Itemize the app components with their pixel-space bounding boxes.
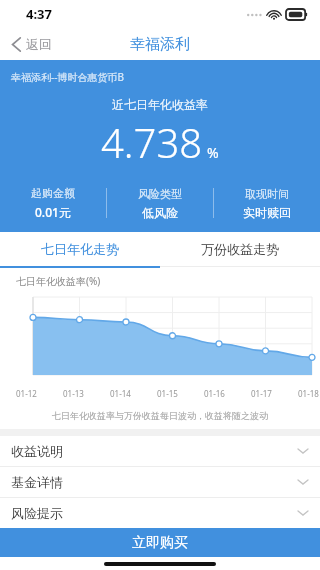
staticText: 返回 bbox=[26, 36, 52, 52]
staticText: 风险类型 bbox=[138, 187, 182, 201]
staticText: 幸福添利 bbox=[130, 35, 190, 54]
button[interactable]: 七日年化走势 bbox=[0, 232, 160, 266]
staticText: 01-12 bbox=[16, 388, 37, 399]
staticText: 幸福添利--博时合惠货币B bbox=[11, 70, 124, 84]
staticText: 低风险 bbox=[142, 205, 178, 220]
button[interactable]: 立即购买 bbox=[0, 528, 320, 557]
staticText: 近七日年化收益率 bbox=[0, 97, 320, 112]
staticText: % bbox=[207, 143, 219, 162]
staticText: 01-13 bbox=[63, 388, 84, 399]
button[interactable]: 风险提示 bbox=[0, 498, 320, 528]
staticText: 实时赎回 bbox=[243, 205, 291, 220]
staticText: 七日年化收益率与万份收益每日波动，收益将随之波动 bbox=[0, 410, 320, 421]
staticText: 风险提示 bbox=[11, 505, 63, 521]
staticText: 基金详情 bbox=[11, 474, 63, 490]
button[interactable]: 基金详情 bbox=[0, 467, 320, 497]
staticText: 七日年化走势 bbox=[41, 241, 119, 257]
staticText: 起购金额 bbox=[31, 186, 75, 200]
button[interactable]: 返回 bbox=[0, 32, 64, 56]
staticText: 0.01元 bbox=[35, 204, 71, 220]
staticText: 万份收益走势 bbox=[201, 241, 279, 257]
staticText: 立即购买 bbox=[132, 534, 188, 552]
staticText: 4:37 bbox=[26, 5, 52, 23]
staticText: 取现时间 bbox=[245, 187, 289, 201]
other: Expand 基金详情 bbox=[298, 479, 308, 485]
other: Expand 收益说明 bbox=[298, 448, 308, 454]
staticText: 七日年化收益率(%) bbox=[16, 274, 101, 288]
staticText: 01-16 bbox=[204, 388, 225, 399]
other: Expand 风险提示 bbox=[298, 510, 308, 516]
button[interactable]: 收益说明 bbox=[0, 436, 320, 466]
staticText: 01-14 bbox=[110, 388, 131, 399]
staticText: 01-15 bbox=[157, 388, 178, 399]
staticText: 01-17 bbox=[251, 388, 272, 399]
staticText: 4.738 bbox=[101, 115, 203, 169]
button[interactable]: 万份收益走势 bbox=[160, 232, 320, 266]
staticText: 01-18 bbox=[298, 388, 319, 399]
staticText: 收益说明 bbox=[11, 443, 63, 459]
